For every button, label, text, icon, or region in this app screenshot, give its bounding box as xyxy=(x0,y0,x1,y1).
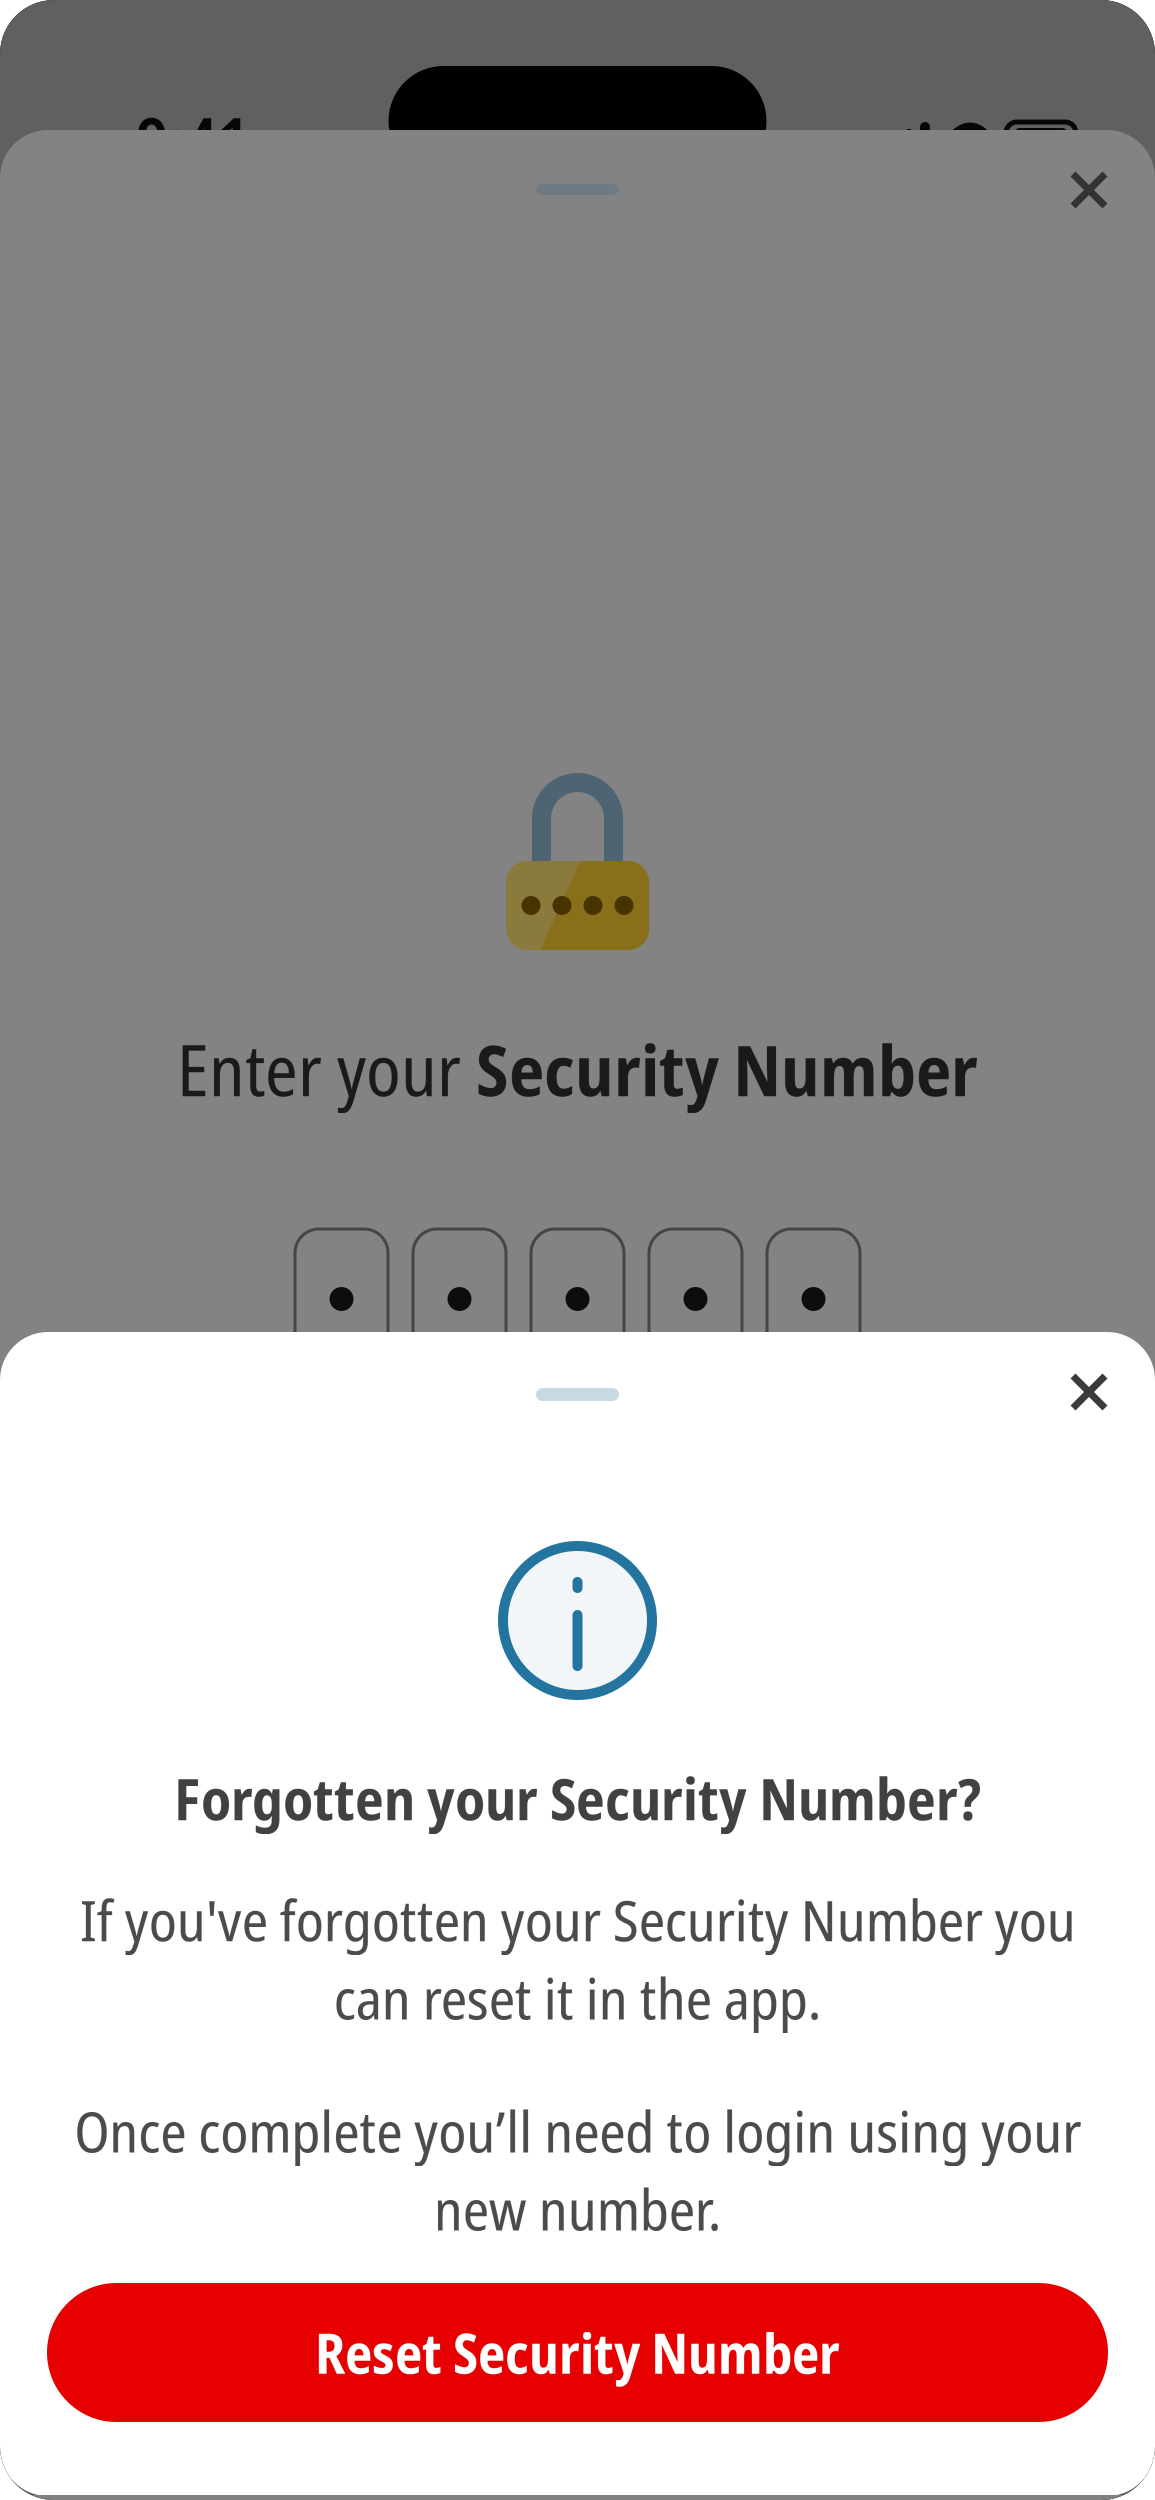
staticText: Reset Security Number xyxy=(315,2315,840,2390)
staticText: If you've forgotten your Security Number… xyxy=(79,1880,1075,2036)
staticText: Enter your Security Number xyxy=(177,1022,978,1116)
button[interactable]: Close xyxy=(1041,142,1137,238)
staticText: 9:41 xyxy=(136,95,249,186)
button[interactable]: Close xyxy=(1041,1344,1137,1440)
button[interactable]: Reset Security Number xyxy=(47,2283,1108,2422)
staticText: Forgotten your Security Number? xyxy=(174,1759,981,1837)
staticText: Once complete you’ll need to login using… xyxy=(74,2091,1081,2247)
